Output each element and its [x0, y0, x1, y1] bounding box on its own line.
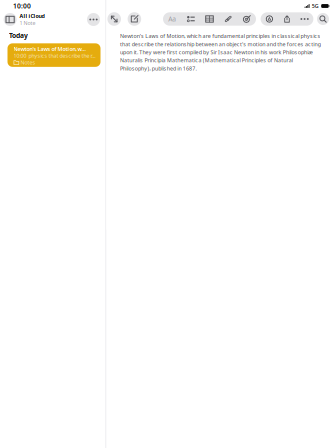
button[interactable]: Table — [200, 12, 219, 26]
button[interactable]: Share — [278, 12, 296, 26]
staticText: Notes — [20, 59, 35, 66]
button[interactable]: Search — [317, 13, 329, 25]
staticText: 5G — [312, 2, 319, 10]
button[interactable]: Apple Intelligence — [261, 12, 278, 26]
button[interactable]: Toggle Sidebar — [4, 13, 17, 26]
button[interactable]: Newton's Laws of Motion, w… — [7, 43, 100, 67]
staticText: 10:00 physics that describe the r… — [13, 52, 95, 59]
staticText: All iCloud — [20, 12, 45, 19]
button[interactable]: More — [296, 12, 313, 26]
staticText: Newton's Laws of Motion, w… — [13, 45, 85, 52]
staticText: 1 Note — [20, 19, 36, 27]
button[interactable]: Checklist — [182, 12, 200, 26]
button[interactable]: New Note — [128, 12, 141, 26]
button[interactable]: More — [87, 13, 100, 26]
staticText: Aa — [168, 15, 176, 23]
staticText: Today — [9, 31, 28, 40]
staticText: 10:00 — [13, 2, 31, 10]
button[interactable]: Markup — [237, 12, 256, 26]
button[interactable]: Aa — [163, 12, 182, 26]
button[interactable]: Expand — [107, 12, 121, 26]
staticText: Newton's Laws of Motion, which are funda… — [120, 32, 321, 72]
button[interactable]: Attach — [219, 12, 237, 26]
